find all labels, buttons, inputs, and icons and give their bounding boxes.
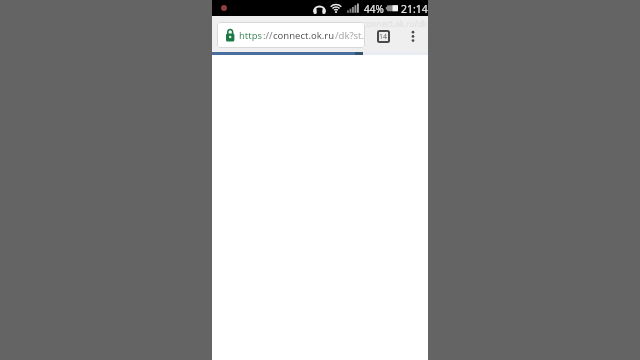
staticText: /dk?st.c — [335, 29, 365, 42]
button[interactable]: 14 — [377, 30, 390, 43]
staticText: 44% — [364, 2, 384, 16]
button[interactable] — [408, 28, 418, 45]
staticText: connect.ok.ru/dk — [363, 18, 427, 29]
staticText: connect.ok.ru — [273, 29, 335, 42]
staticText: https — [239, 29, 263, 42]
button[interactable]: https — [217, 22, 365, 48]
staticText: :// — [263, 29, 273, 42]
staticText: 14 — [379, 32, 388, 42]
staticText: 21:14 — [401, 2, 428, 16]
